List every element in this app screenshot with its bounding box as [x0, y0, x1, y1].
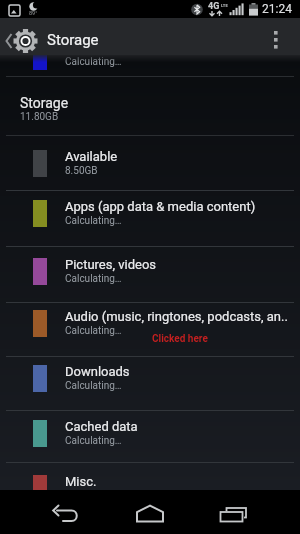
button[interactable]: Cached data [0, 406, 300, 462]
staticText: Calculating… [65, 215, 122, 227]
button[interactable] [205, 490, 257, 534]
staticText: Pictures, videos [65, 257, 157, 272]
button[interactable] [124, 490, 176, 534]
staticText: Calculating… [65, 435, 122, 447]
staticText: Downloads [65, 364, 130, 379]
button[interactable]: Audio (music, ringtones, podcasts, an.. [0, 296, 300, 352]
button[interactable]: Apps (app data & media content) [0, 186, 300, 242]
button[interactable]: Pictures, videos [0, 244, 300, 300]
staticText: 21:24 [262, 2, 292, 16]
staticText: Storage [47, 31, 99, 49]
staticText: Storage [20, 95, 69, 111]
staticText: Misc. [65, 474, 97, 489]
staticText: 8.50GB [65, 165, 98, 177]
staticText: 11.80GB [20, 111, 59, 123]
staticText: LTE [221, 3, 228, 8]
staticText: Calculating… [65, 273, 122, 285]
staticText: Audio (music, ringtones, podcasts, an.. [65, 309, 288, 324]
staticText: 4G [208, 1, 220, 12]
staticText: 89° [29, 10, 38, 16]
staticText: Calculating… [65, 56, 122, 68]
button[interactable]: Storage [0, 18, 115, 55]
staticText: Available [65, 149, 118, 164]
staticText: Cached data [65, 419, 138, 434]
staticText: Calculating… [65, 325, 122, 337]
button[interactable] [262, 18, 300, 55]
button[interactable]: Misc. [0, 461, 300, 517]
staticText: Clicked here [152, 333, 208, 345]
staticText: Calculating… [65, 380, 122, 392]
button[interactable] [40, 490, 92, 534]
button[interactable]: Downloads [0, 351, 300, 407]
button[interactable]: Available [0, 136, 300, 192]
staticText: Apps (app data & media content) [65, 199, 256, 214]
